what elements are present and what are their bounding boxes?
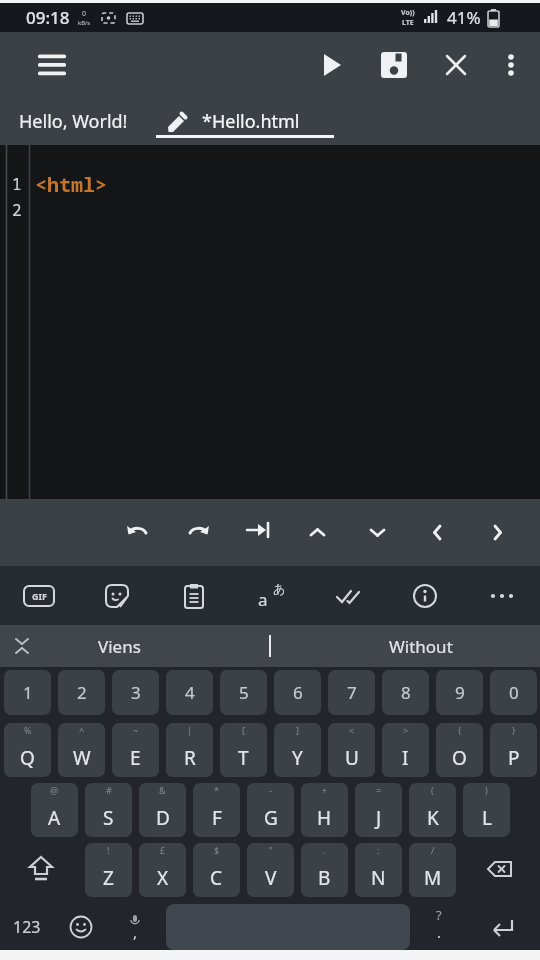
button[interactable] [464, 903, 540, 950]
button[interactable]: = [355, 783, 402, 837]
staticText: $ [214, 844, 220, 856]
staticText: P [508, 745, 520, 771]
button[interactable]: 6 [274, 670, 321, 715]
button[interactable]: + [301, 783, 348, 837]
staticText: 8 [401, 681, 411, 704]
button[interactable]: < [328, 723, 375, 777]
staticText: B [318, 865, 331, 891]
button[interactable]: { [436, 723, 483, 777]
button[interactable] [476, 511, 520, 555]
staticText: { [458, 724, 462, 736]
staticText: ~ [133, 724, 139, 736]
button[interactable] [296, 511, 340, 555]
staticText: W [73, 745, 91, 771]
button[interactable]: . [301, 843, 348, 897]
staticText: Y [292, 745, 303, 771]
button[interactable]: # [85, 783, 132, 837]
staticText: 123 [13, 916, 41, 938]
button[interactable]: Hello, World! [19, 109, 128, 134]
button[interactable] [116, 511, 160, 555]
staticText: F [212, 805, 222, 831]
staticText: T [238, 745, 249, 771]
button[interactable]: , [108, 903, 162, 950]
staticText: ) [485, 784, 488, 796]
staticText: *Hello.html [202, 109, 300, 134]
staticText: D [156, 805, 170, 831]
button[interactable]: | [166, 723, 213, 777]
button[interactable] [463, 843, 537, 897]
staticText: # [106, 784, 112, 796]
button[interactable]: 8 [382, 670, 429, 715]
staticText: Z [103, 865, 114, 891]
staticText: あ [273, 581, 286, 596]
button[interactable]: ? [414, 903, 464, 950]
button[interactable]: ~ [112, 723, 159, 777]
button[interactable] [176, 511, 220, 555]
staticText: A [48, 805, 61, 831]
button[interactable] [491, 45, 531, 85]
button[interactable] [194, 625, 345, 667]
button[interactable]: ^ [58, 723, 105, 777]
button[interactable]: Without [345, 625, 496, 667]
staticText: a [258, 588, 268, 611]
button[interactable]: *Hello.html [156, 97, 334, 145]
staticText: H [317, 805, 332, 831]
button[interactable]: } [490, 723, 537, 777]
staticText: Q [20, 745, 35, 771]
button[interactable]: 123 [0, 903, 54, 950]
button[interactable]: 9 [436, 670, 483, 715]
button[interactable]: ] [274, 723, 321, 777]
staticText: 4 [185, 681, 195, 704]
button[interactable]: % [4, 723, 51, 777]
button[interactable]: ) [463, 783, 510, 837]
button[interactable]: > [382, 723, 429, 777]
button[interactable]: / [409, 843, 456, 897]
button[interactable]: - [247, 783, 294, 837]
button[interactable]: 0 [490, 670, 537, 715]
staticText: = [376, 784, 382, 796]
button[interactable] [386, 566, 463, 625]
button[interactable]: £ [139, 843, 186, 897]
button[interactable] [356, 511, 400, 555]
button[interactable]: 1 [4, 670, 51, 715]
button[interactable]: a [232, 566, 309, 625]
button[interactable] [463, 566, 540, 625]
button[interactable] [4, 843, 78, 897]
staticText: E [130, 745, 141, 771]
button[interactable]: " [247, 843, 294, 897]
button[interactable]: ( [409, 783, 456, 837]
button[interactable]: & [139, 783, 186, 837]
button[interactable] [371, 42, 417, 88]
button[interactable] [236, 511, 280, 555]
button[interactable] [155, 566, 232, 625]
button[interactable] [416, 511, 460, 555]
staticText: J [376, 805, 382, 831]
button[interactable]: 2 [58, 670, 105, 715]
staticText: C [210, 865, 223, 891]
button[interactable]: * [193, 783, 240, 837]
staticText: L [482, 805, 492, 831]
button[interactable]: 4 [166, 670, 213, 715]
button[interactable]: ! [85, 843, 132, 897]
staticText: : [377, 844, 380, 856]
staticText: + [322, 784, 328, 796]
button[interactable] [0, 625, 44, 667]
button[interactable]: 7 [328, 670, 375, 715]
staticText: . [323, 844, 326, 856]
button[interactable] [309, 42, 355, 88]
button[interactable]: 3 [112, 670, 159, 715]
button[interactable] [30, 43, 74, 87]
button[interactable]: GIF [0, 566, 78, 625]
button[interactable] [54, 903, 108, 950]
button[interactable] [78, 566, 155, 625]
button[interactable] [433, 42, 479, 88]
button[interactable]: [ [220, 723, 267, 777]
button[interactable]: $ [193, 843, 240, 897]
staticText: 2 [77, 681, 87, 704]
button[interactable]: 5 [220, 670, 267, 715]
button[interactable]: @ [31, 783, 78, 837]
button[interactable]: Viens [44, 625, 194, 667]
button[interactable] [309, 566, 386, 625]
button[interactable]: : [355, 843, 402, 897]
